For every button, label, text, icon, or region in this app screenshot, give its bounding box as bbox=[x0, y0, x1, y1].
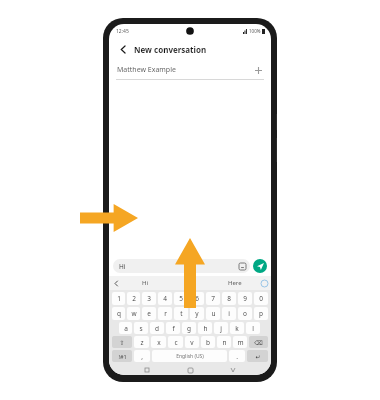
button[interactable]: r bbox=[158, 307, 172, 320]
staticText: Hi bbox=[142, 279, 148, 287]
staticText: , bbox=[141, 352, 143, 361]
button[interactable]: p bbox=[254, 307, 268, 320]
button[interactable]: j bbox=[214, 322, 228, 334]
staticText: . bbox=[236, 352, 238, 361]
staticText: n bbox=[222, 338, 227, 347]
button[interactable]: x bbox=[151, 336, 166, 348]
button[interactable]: l bbox=[246, 322, 260, 334]
button[interactable]: d bbox=[150, 322, 164, 334]
button[interactable]: z bbox=[134, 336, 149, 348]
staticText: s bbox=[139, 324, 143, 333]
staticText: !#1 bbox=[118, 353, 127, 360]
button[interactable]: 7 bbox=[206, 292, 220, 305]
button[interactable]: t bbox=[174, 307, 188, 320]
staticText: h bbox=[203, 324, 208, 333]
button[interactable]: ↵ bbox=[247, 350, 268, 362]
button[interactable]: 8 bbox=[222, 292, 236, 305]
button[interactable]: Add recipient bbox=[252, 64, 264, 76]
button[interactable]: Hi bbox=[123, 276, 167, 290]
button[interactable]: 2 bbox=[127, 292, 140, 305]
other: Emoji bbox=[236, 260, 248, 272]
button[interactable]: Send bbox=[253, 259, 267, 273]
staticText: x bbox=[157, 338, 161, 347]
staticText: Here bbox=[228, 279, 242, 287]
staticText: r bbox=[164, 309, 167, 318]
staticText: Hi bbox=[119, 262, 236, 271]
button[interactable]: Home bbox=[185, 365, 195, 375]
button[interactable]: c bbox=[168, 336, 183, 348]
staticText: ⌫ bbox=[254, 339, 263, 346]
button[interactable]: a bbox=[119, 322, 132, 334]
staticText: p bbox=[259, 309, 263, 318]
staticText: 4 bbox=[163, 294, 167, 303]
staticText: q bbox=[117, 309, 121, 318]
staticText: 12:45 bbox=[116, 28, 129, 35]
staticText: 100% bbox=[249, 28, 261, 34]
staticText: j bbox=[220, 324, 222, 333]
staticText: 5 bbox=[179, 294, 183, 303]
staticText: 2 bbox=[132, 294, 136, 303]
button[interactable]: i bbox=[222, 307, 236, 320]
button[interactable]: 0 bbox=[254, 292, 268, 305]
button[interactable]: Here bbox=[212, 276, 257, 290]
button[interactable]: s bbox=[134, 322, 148, 334]
staticText: b bbox=[206, 338, 210, 347]
button[interactable]: q bbox=[112, 307, 125, 320]
button[interactable]: 4 bbox=[158, 292, 172, 305]
button[interactable]: b bbox=[201, 336, 215, 348]
button[interactable]: 6 bbox=[190, 292, 204, 305]
button[interactable]: Hey bbox=[167, 276, 212, 290]
button[interactable]: g bbox=[182, 322, 196, 334]
button[interactable]: m bbox=[233, 336, 247, 348]
staticText: 1 bbox=[117, 294, 121, 303]
button[interactable]: 1 bbox=[112, 292, 125, 305]
staticText: New conversation bbox=[134, 44, 207, 55]
button[interactable]: w bbox=[127, 307, 140, 320]
staticText: z bbox=[140, 338, 144, 347]
staticText: d bbox=[155, 324, 159, 333]
staticText: k bbox=[235, 324, 239, 333]
staticText: l bbox=[252, 324, 254, 333]
staticText: a bbox=[124, 324, 128, 333]
button[interactable]: ⌫ bbox=[249, 336, 268, 348]
staticText: i bbox=[228, 309, 230, 318]
button[interactable]: h bbox=[198, 322, 212, 334]
button[interactable]: 9 bbox=[238, 292, 252, 305]
button[interactable]: Recents bbox=[142, 365, 152, 375]
staticText: y bbox=[195, 309, 199, 318]
button[interactable]: u bbox=[206, 307, 220, 320]
staticText: 9 bbox=[243, 294, 247, 303]
button[interactable]: f bbox=[166, 322, 180, 334]
button[interactable]: Back bbox=[228, 365, 238, 375]
button[interactable]: k bbox=[230, 322, 244, 334]
button[interactable]: Back bbox=[116, 42, 130, 56]
button[interactable]: n bbox=[217, 336, 231, 348]
staticText: 7 bbox=[211, 294, 215, 303]
staticText: c bbox=[174, 338, 178, 347]
button[interactable]: Keyboard settings bbox=[257, 276, 271, 290]
button[interactable]: y bbox=[190, 307, 204, 320]
staticText: ⇧ bbox=[119, 339, 125, 346]
button[interactable]: 5 bbox=[174, 292, 188, 305]
button[interactable]: e bbox=[142, 307, 156, 320]
button[interactable]: 3 bbox=[142, 292, 156, 305]
staticText: t bbox=[180, 309, 183, 318]
button[interactable]: English (US) bbox=[152, 350, 227, 362]
staticText: e bbox=[147, 309, 151, 318]
button[interactable]: Hi bbox=[113, 259, 250, 273]
staticText: 0 bbox=[259, 294, 263, 303]
staticText: ↵ bbox=[255, 353, 261, 360]
button[interactable]: ⇧ bbox=[112, 336, 132, 348]
button[interactable]: o bbox=[238, 307, 252, 320]
staticText: f bbox=[172, 324, 175, 333]
staticText: English (US) bbox=[176, 353, 204, 360]
staticText: g bbox=[187, 324, 191, 333]
button[interactable]: !#1 bbox=[112, 350, 132, 362]
button[interactable]: v bbox=[185, 336, 199, 348]
staticText: 6 bbox=[195, 294, 199, 303]
button[interactable]: . bbox=[229, 350, 245, 362]
button[interactable]: More suggestions bbox=[109, 276, 123, 290]
staticText: o bbox=[243, 309, 247, 318]
button[interactable]: , bbox=[134, 350, 150, 362]
